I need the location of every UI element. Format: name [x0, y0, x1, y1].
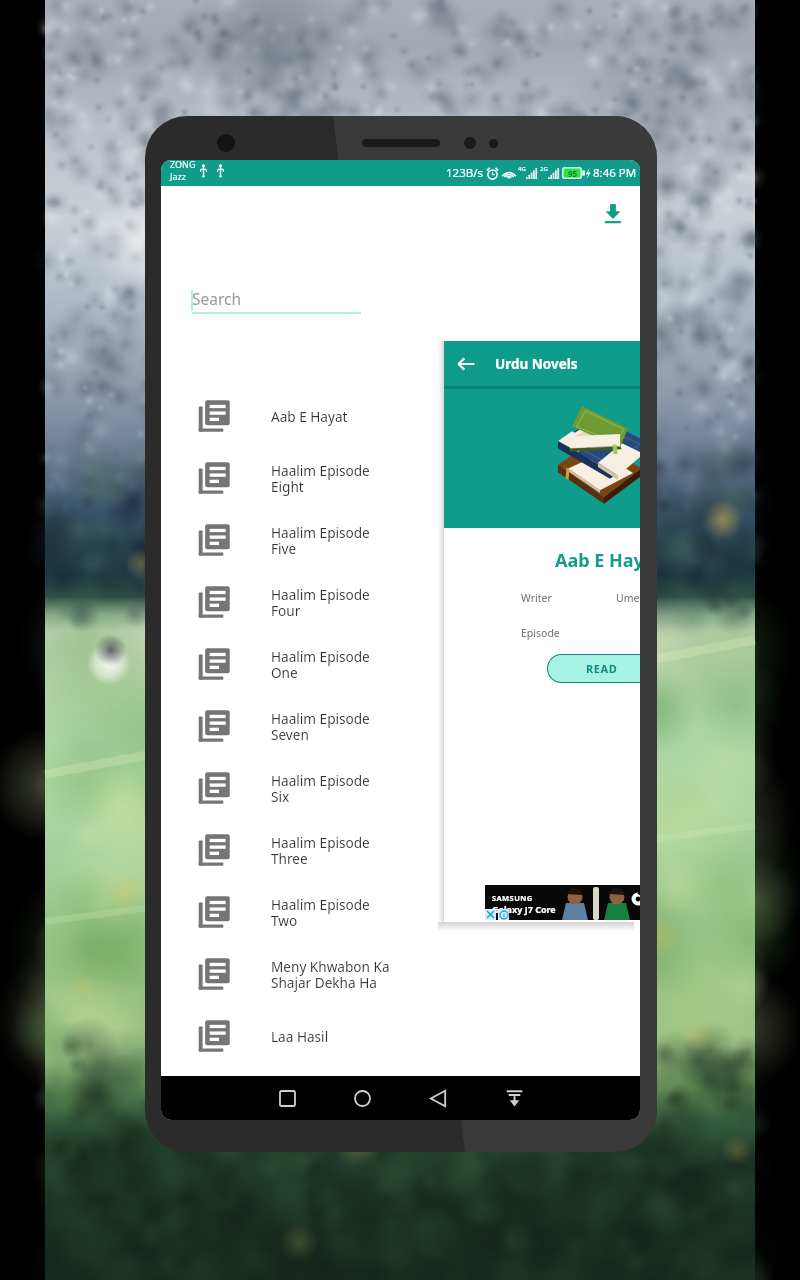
button[interactable]: READ	[547, 654, 640, 683]
button[interactable]: Haalim Episode Eight	[161, 447, 640, 509]
button[interactable]: Back	[417, 1077, 459, 1119]
staticText: Meny Khwabon Ka Shajar Dekha Ha	[271, 957, 390, 992]
staticText: Haalim Episode Two	[271, 895, 370, 930]
button[interactable]: Haalim Episode Six	[161, 757, 640, 819]
button[interactable]: Back	[453, 351, 479, 377]
staticText: Search	[192, 288, 242, 309]
button[interactable]: Home	[341, 1077, 383, 1119]
button[interactable]: Download	[596, 197, 630, 231]
staticText: Writer	[521, 591, 552, 605]
staticText: 2G	[540, 165, 548, 173]
staticText: Haalim Episode Three	[271, 833, 370, 868]
button[interactable]: Meny Khwabon Ka Shajar Dekha Ha	[161, 943, 640, 1005]
button[interactable]: Haalim Episode Four	[161, 571, 640, 633]
staticText: 4G	[518, 165, 526, 173]
staticText: Jazz	[170, 170, 186, 182]
button[interactable]: Haalim Episode One	[161, 633, 640, 695]
staticText: Haalim Episode Five	[271, 523, 370, 558]
staticText: Haalim Episode Six	[271, 771, 370, 806]
staticText: Haalim Episode Four	[271, 585, 370, 620]
staticText: Galaxy J7 Core	[492, 903, 556, 915]
button[interactable]: Haalim Episode Two	[161, 881, 640, 943]
button[interactable]: Aab E Hayat	[161, 385, 640, 447]
button[interactable]: Haalim Episode Seven	[161, 695, 640, 757]
staticText: SAMSUNG	[492, 893, 533, 903]
button[interactable]: Laa Hasil	[161, 1005, 640, 1067]
button[interactable]: Recent apps	[266, 1077, 308, 1119]
staticText: Haalim Episode One	[271, 647, 370, 682]
staticText: ZONG	[170, 160, 196, 170]
staticText: READ	[586, 661, 618, 676]
staticText: Aab E Hayat	[271, 407, 348, 426]
staticText: Ume	[616, 591, 640, 605]
button[interactable]: Advertisement	[485, 885, 640, 920]
staticText: 123B/s	[446, 165, 483, 181]
staticText: Aab E Hayat	[555, 548, 640, 573]
staticText: 8:46 PM	[593, 165, 637, 181]
staticText: Episode	[521, 626, 560, 640]
staticText: 95	[568, 168, 578, 179]
button[interactable]: Back	[444, 341, 640, 386]
staticText: Haalim Episode Seven	[271, 709, 370, 744]
staticText: Haalim Episode Eight	[271, 461, 370, 496]
button[interactable]: Hide navigation bar	[493, 1077, 535, 1119]
button[interactable]: Haalim Episode Three	[161, 819, 640, 881]
staticText: Laa Hasil	[271, 1027, 329, 1046]
button[interactable]: Haalim Episode Five	[161, 509, 640, 571]
staticText: Urdu Novels	[495, 355, 578, 373]
